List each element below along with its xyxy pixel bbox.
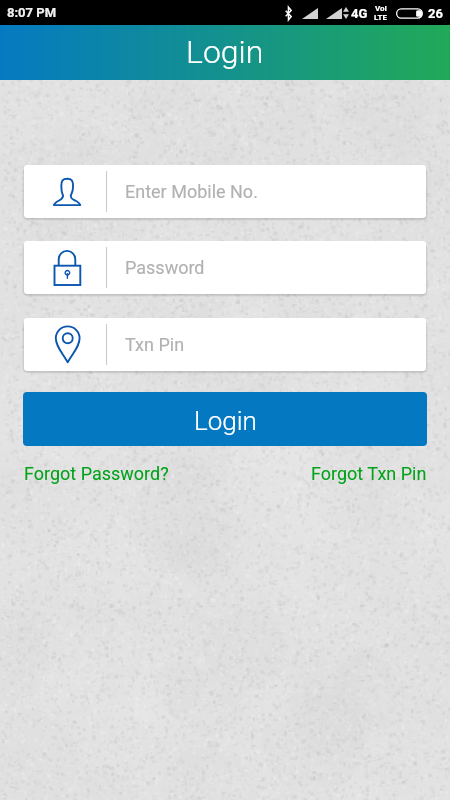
staticText: Login (194, 406, 257, 436)
button[interactable]: Forgot Txn Pin (311, 463, 427, 484)
staticText: 26 (428, 6, 443, 21)
button[interactable]: Password (24, 241, 426, 294)
button[interactable]: Login (23, 392, 427, 446)
button[interactable]: Forgot Password? (24, 463, 169, 484)
staticText: Password (125, 257, 205, 278)
button[interactable]: Mobile number (24, 165, 426, 218)
staticText: Login (186, 33, 264, 71)
staticText: Forgot Txn Pin (311, 463, 427, 484)
staticText: 8:07 PM (7, 5, 57, 20)
staticText: 4G (351, 6, 368, 21)
staticText: VoI (375, 4, 387, 13)
staticText: LTE (374, 13, 387, 22)
staticText: Txn Pin (125, 334, 185, 355)
staticText: Enter Mobile No. (125, 181, 258, 202)
button[interactable]: Transaction pin (24, 318, 426, 371)
staticText: Forgot Password? (24, 463, 169, 484)
